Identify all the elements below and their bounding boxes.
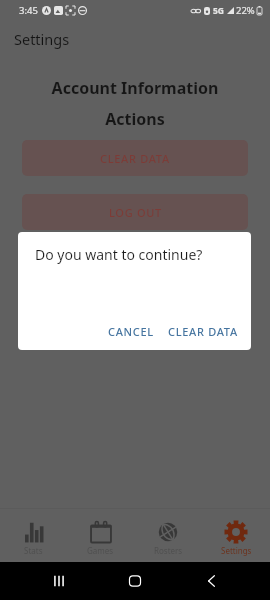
- staticText: CLEAR DATA: [168, 324, 238, 339]
- button[interactable]: Recents: [46, 568, 72, 594]
- staticText: Settings: [221, 545, 252, 556]
- staticText: LOG OUT: [109, 205, 162, 220]
- button[interactable]: CLEAR DATA: [22, 140, 248, 176]
- staticText: Stats: [24, 545, 43, 556]
- staticText: Games: [87, 545, 114, 556]
- button[interactable]: Stats: [0, 509, 67, 562]
- staticText: Account Information Actions: [34, 77, 236, 130]
- button[interactable]: CLEAR DATA: [161, 317, 245, 346]
- staticText: CLEAR DATA: [100, 151, 170, 166]
- button[interactable]: Rosters: [134, 509, 202, 562]
- button[interactable]: CANCEL: [101, 317, 161, 346]
- staticText: 3:45: [19, 4, 38, 17]
- staticText: Settings: [14, 29, 70, 49]
- button[interactable]: Back: [198, 568, 224, 594]
- staticText: 22%: [236, 4, 255, 17]
- button[interactable]: Settings: [202, 509, 270, 562]
- staticText: Rosters: [154, 545, 183, 556]
- staticText: Do you want to continue?: [35, 245, 203, 264]
- staticText: CANCEL: [108, 324, 154, 339]
- button[interactable]: Games: [67, 509, 134, 562]
- button[interactable]: Home: [122, 568, 148, 594]
- staticText: 5G: [213, 5, 225, 17]
